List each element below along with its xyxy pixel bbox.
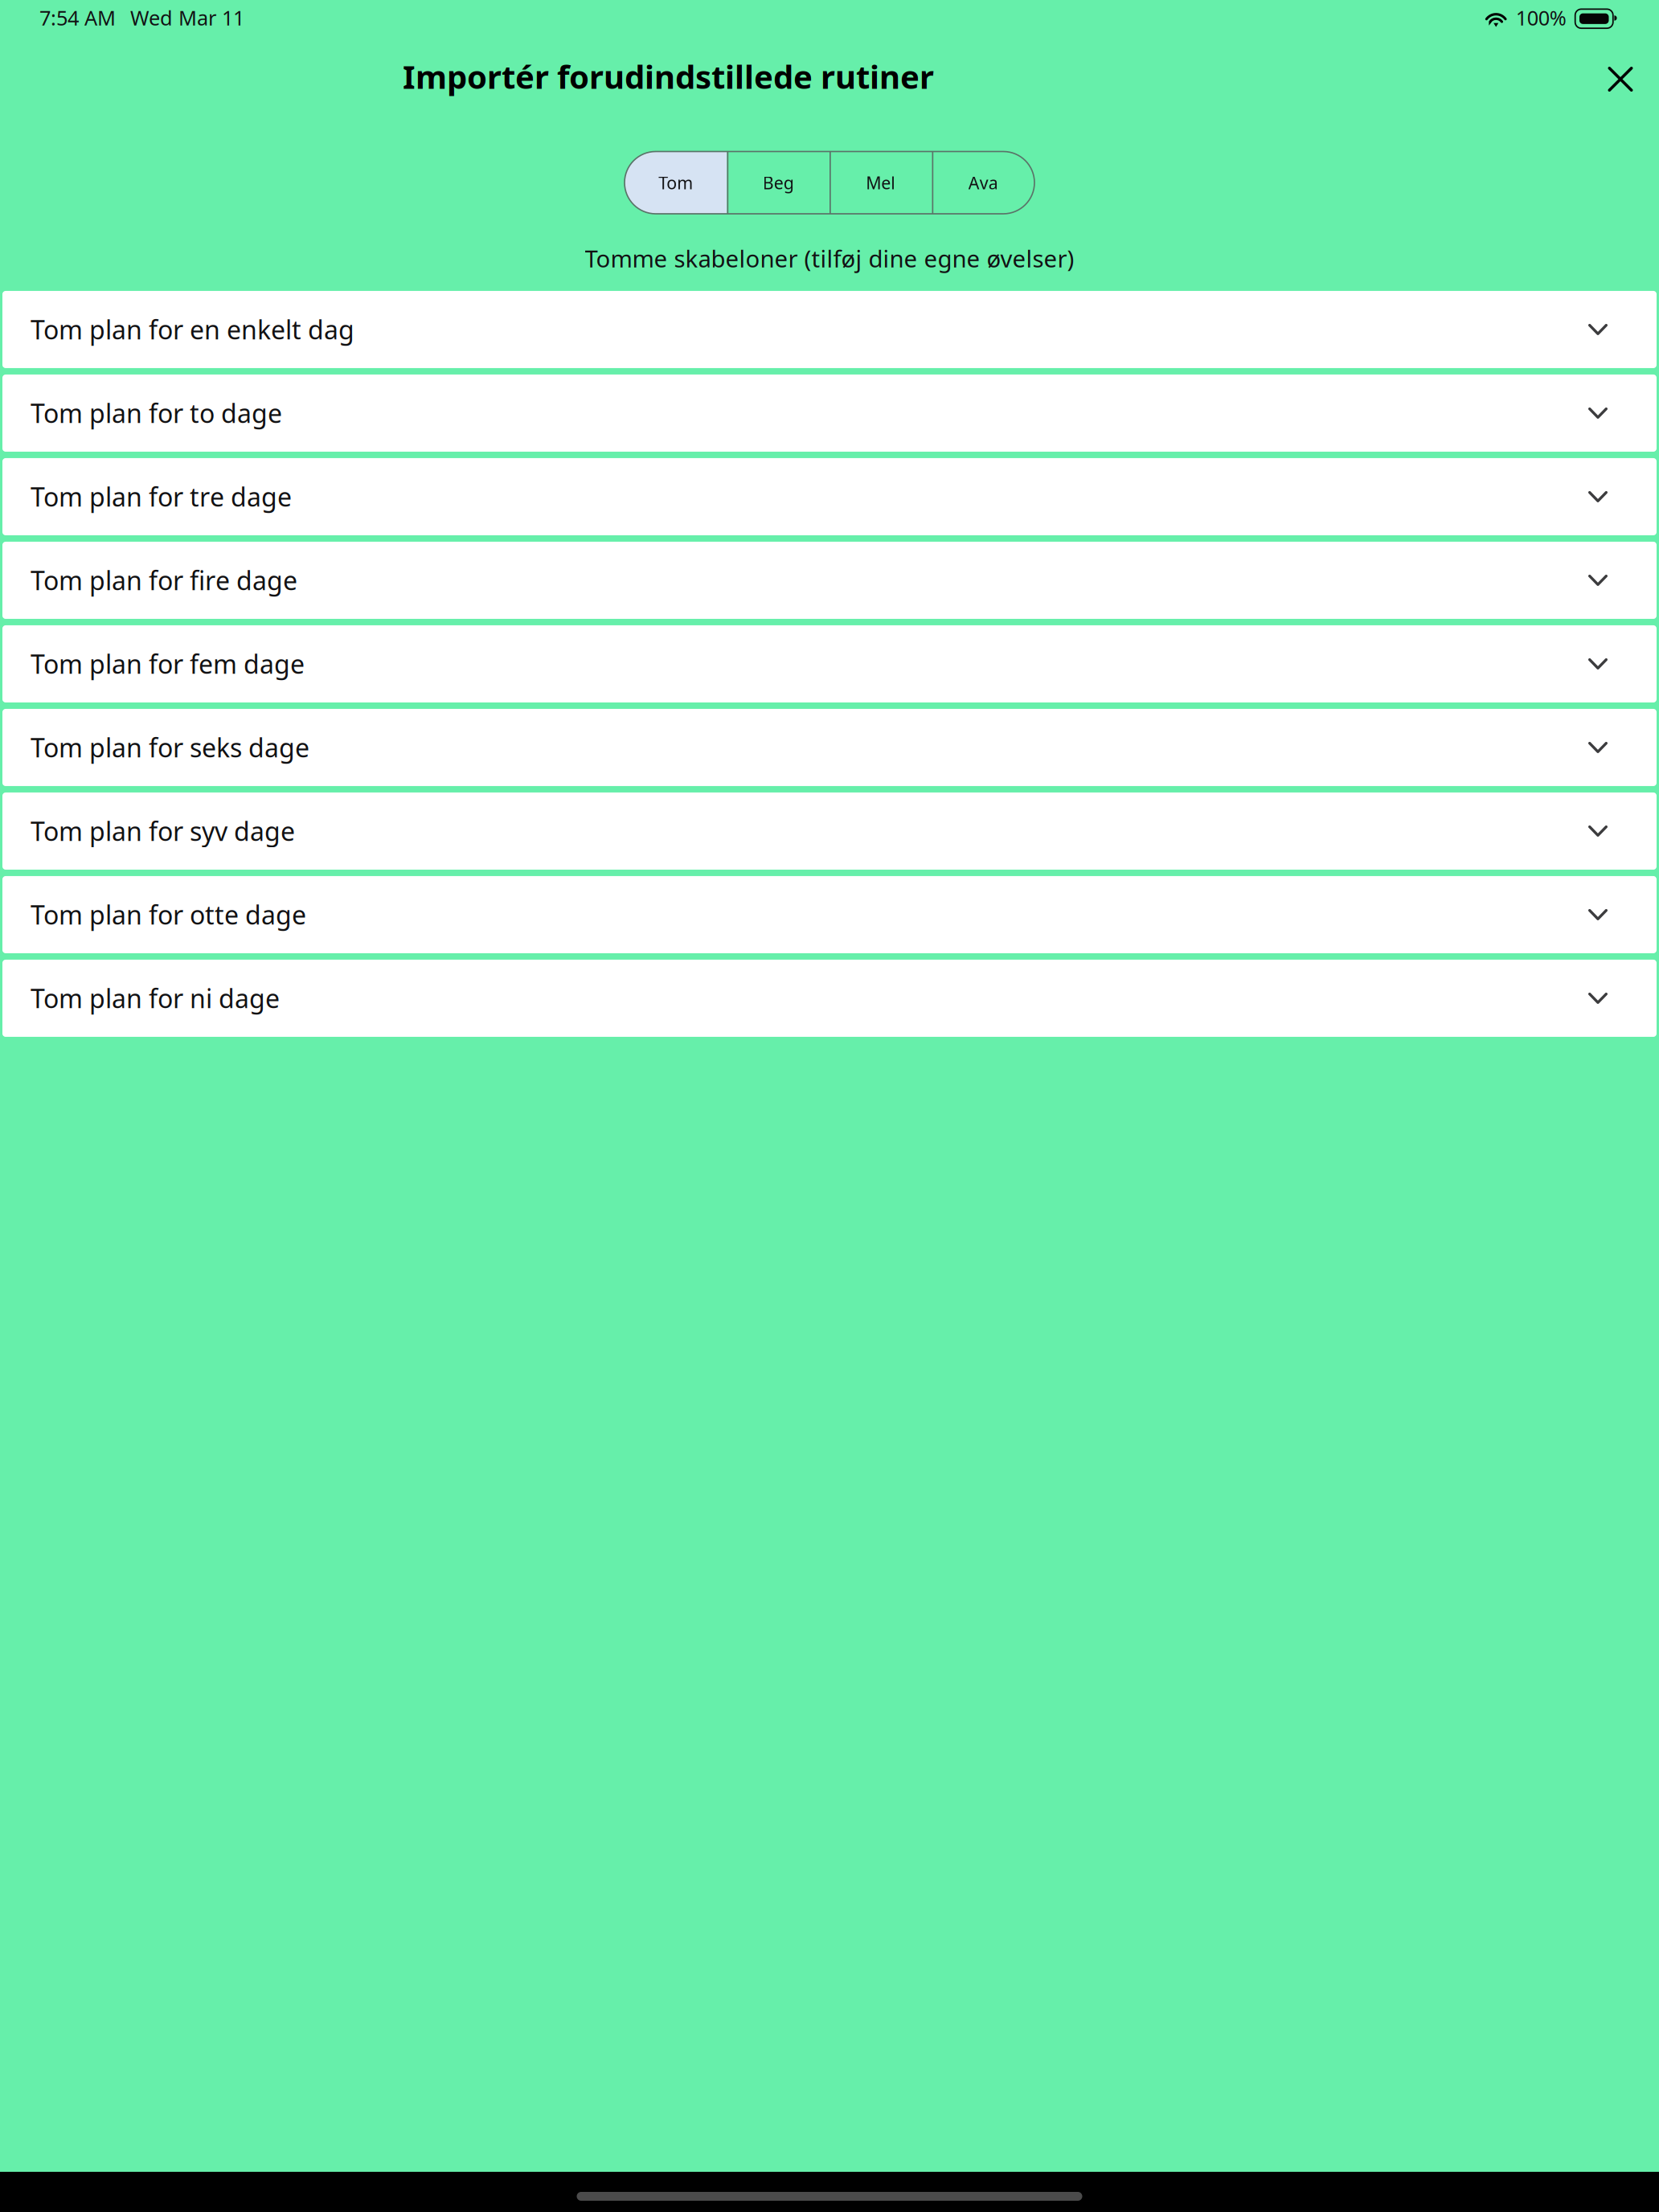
staticText: Beg (763, 171, 794, 194)
button[interactable]: Tom plan for to dage (2, 375, 1657, 452)
staticText: Tom (658, 171, 693, 194)
button[interactable]: Beg (727, 152, 829, 214)
button[interactable]: Tom plan for syv dage (2, 793, 1657, 870)
staticText: 100% (1516, 4, 1566, 31)
button[interactable]: Tom plan for seks dage (2, 709, 1657, 786)
staticText: Tom plan for syv dage (31, 814, 295, 848)
button[interactable]: Tom plan for fire dage (2, 542, 1657, 619)
staticText: Tom plan for en enkelt dag (31, 312, 354, 347)
button[interactable]: Tom plan for fem dage (2, 625, 1657, 703)
staticText: Tom plan for fem dage (31, 647, 305, 681)
staticText: Tom plan for fire dage (31, 563, 297, 597)
staticText: Tom plan for seks dage (31, 730, 309, 765)
button[interactable]: Tom (625, 152, 727, 214)
staticText: Wed Mar 11 (130, 4, 244, 31)
staticText: Tom plan for tre dage (31, 480, 292, 514)
staticText: Tomme skabeloner (tilføj dine egne øvels… (585, 243, 1074, 274)
button[interactable]: Tom plan for tre dage (2, 458, 1657, 535)
staticText: Ava (968, 171, 998, 194)
staticText: Tom plan for otte dage (31, 898, 306, 932)
button[interactable]: Mel (829, 152, 932, 214)
button[interactable]: Luk (1588, 45, 1653, 111)
staticText: Mel (866, 171, 896, 194)
button[interactable]: Tom plan for ni dage (2, 960, 1657, 1037)
staticText: Importér forudindstillede rutiner (403, 55, 934, 98)
staticText: Tom plan for to dage (31, 396, 282, 430)
button[interactable]: Ava (932, 152, 1034, 214)
staticText: Tom plan for ni dage (31, 981, 280, 1015)
button[interactable]: Tom plan for otte dage (2, 876, 1657, 953)
staticText: 7:54 AM (39, 4, 116, 31)
button[interactable]: Tom plan for en enkelt dag (2, 291, 1657, 368)
